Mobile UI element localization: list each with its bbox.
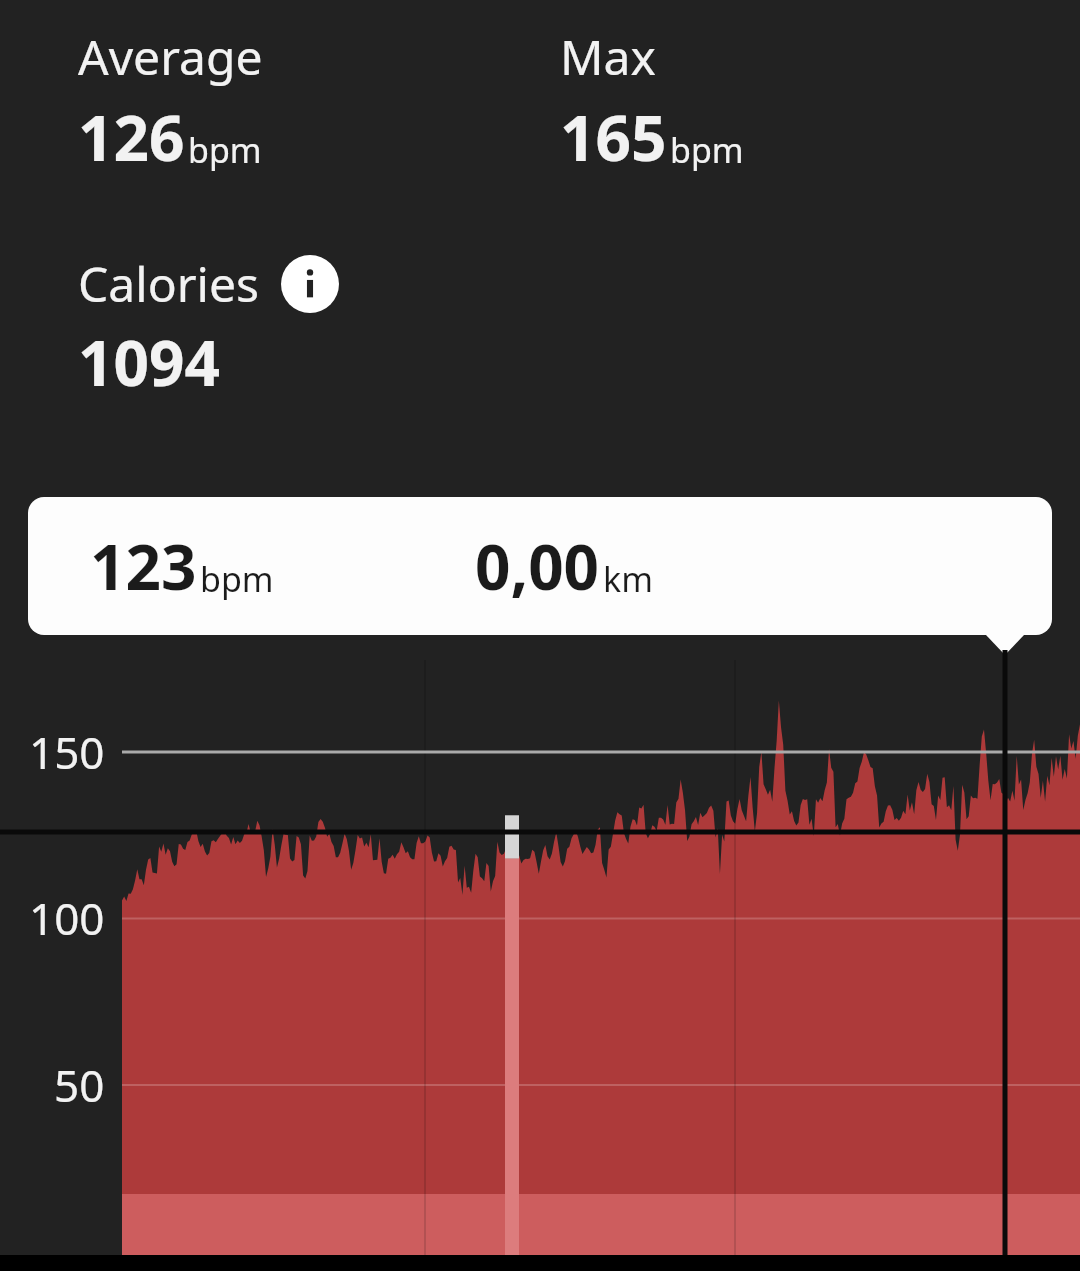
- staticText: bpm: [188, 127, 262, 173]
- staticText: bpm: [670, 127, 744, 173]
- button[interactable]: Calories info: [281, 255, 339, 313]
- button[interactable]: 123: [28, 497, 1052, 635]
- staticText: bpm: [200, 556, 274, 602]
- staticText: 50: [54, 1055, 105, 1115]
- staticText: 1094: [78, 320, 220, 404]
- staticText: Average: [78, 24, 263, 89]
- staticText: 150: [29, 722, 105, 782]
- button[interactable]: Average: [78, 24, 560, 179]
- staticText: Max: [560, 24, 656, 89]
- staticText: km: [603, 556, 653, 602]
- staticText: Calories: [78, 251, 259, 316]
- staticText: 123: [90, 524, 197, 608]
- button[interactable]: Max: [560, 24, 744, 179]
- staticText: 100: [29, 888, 105, 948]
- staticText: 126: [78, 95, 185, 179]
- staticText: 165: [560, 95, 667, 179]
- staticText: 0,00: [475, 524, 600, 608]
